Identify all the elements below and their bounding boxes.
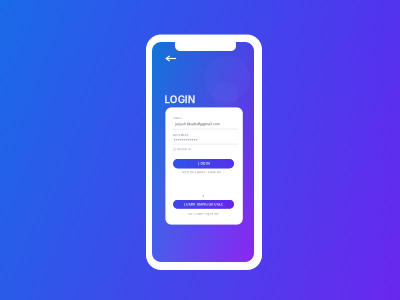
staticText: EMAIL [173, 117, 182, 120]
staticText: LOGIN USING GOOGLE [184, 202, 223, 206]
staticText: PASSWORD [173, 134, 189, 136]
staticText: Remember Me [177, 148, 191, 151]
staticText: LOGIN [165, 94, 196, 105]
staticText: Forgot your password? Recover here [182, 171, 221, 174]
staticText: jaijush.bkadsdf@gmail.com [175, 122, 220, 126]
button[interactable]: LOGIN USING GOOGLE [173, 200, 234, 209]
staticText: •••••••••••• [174, 138, 198, 142]
staticText: LOGIN [198, 162, 209, 166]
button[interactable]: Back [165, 55, 177, 62]
button[interactable]: LOGIN [173, 159, 234, 168]
staticText: or [202, 195, 204, 198]
staticText: New to Wayne? Register here [187, 212, 218, 215]
